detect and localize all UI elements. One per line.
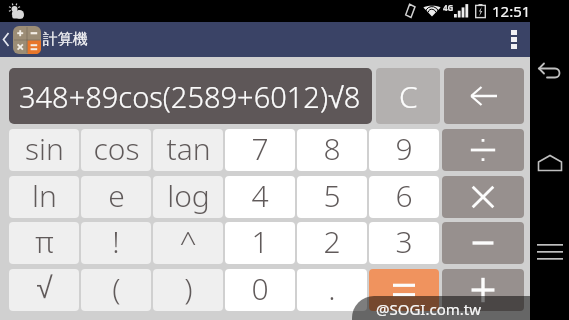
- button[interactable]: e: [81, 176, 151, 218]
- other: ÷: [468, 135, 498, 165]
- staticText: 1: [251, 222, 269, 262]
- staticText: cos: [93, 129, 140, 169]
- staticText: 2: [323, 222, 341, 262]
- button[interactable]: 348+89cos(2589+6012)√8: [9, 68, 372, 124]
- staticText: 348+89cos(2589+6012)√8: [19, 77, 361, 116]
- button[interactable]: C: [376, 68, 440, 124]
- button[interactable]: ×: [442, 176, 524, 218]
- staticText: 0: [251, 269, 269, 309]
- staticText: 8: [323, 129, 341, 169]
- button[interactable]: ln: [9, 176, 79, 218]
- other: +: [468, 275, 498, 305]
- button[interactable]: !: [81, 222, 151, 264]
- button[interactable]: 8: [297, 129, 367, 171]
- button[interactable]: ÷: [442, 129, 524, 171]
- staticText: 4: [251, 176, 269, 216]
- staticText: ln: [32, 176, 57, 216]
- button[interactable]: Back: [530, 52, 569, 92]
- staticText: 3: [395, 222, 413, 262]
- staticText: log: [167, 176, 210, 216]
- button[interactable]: 6: [369, 176, 439, 218]
- staticText: 9: [395, 129, 413, 169]
- other: −: [468, 228, 498, 258]
- button[interactable]: 2: [297, 222, 367, 264]
- button[interactable]: cos: [81, 129, 151, 171]
- button[interactable]: π: [9, 222, 79, 264]
- other: Back: [0, 22, 13, 57]
- staticText: 5: [323, 176, 341, 216]
- staticText: tan: [166, 129, 211, 169]
- button[interactable]: +: [442, 269, 524, 311]
- staticText: sin: [25, 129, 64, 169]
- button[interactable]: Back: [0, 22, 88, 57]
- button[interactable]: ): [153, 269, 223, 311]
- staticText: π: [35, 222, 54, 262]
- staticText: √: [36, 271, 53, 305]
- button[interactable]: 0: [225, 269, 295, 311]
- staticText: .: [328, 269, 336, 309]
- other: =: [389, 275, 419, 305]
- staticText: ^: [179, 222, 197, 262]
- other: ×: [468, 182, 498, 212]
- staticText: (: [112, 269, 121, 309]
- staticText: !: [112, 222, 120, 262]
- button[interactable]: 5: [297, 176, 367, 218]
- staticText: 計算機: [43, 30, 88, 49]
- staticText: e: [108, 176, 125, 216]
- button[interactable]: sin: [9, 129, 79, 171]
- staticText: 12:51: [492, 1, 531, 21]
- button[interactable]: =: [369, 269, 439, 311]
- button[interactable]: 3: [369, 222, 439, 264]
- staticText: @SOGI.com.tw: [376, 299, 481, 319]
- button[interactable]: 4: [225, 176, 295, 218]
- staticText: 4G: [443, 2, 454, 13]
- button[interactable]: Recent apps: [530, 233, 569, 273]
- button[interactable]: √: [9, 269, 79, 311]
- button[interactable]: (: [81, 269, 151, 311]
- button[interactable]: 1: [225, 222, 295, 264]
- staticText: 7: [251, 129, 269, 169]
- button[interactable]: log: [153, 176, 223, 218]
- button[interactable]: 9: [369, 129, 439, 171]
- staticText: 6: [395, 176, 413, 216]
- button[interactable]: tan: [153, 129, 223, 171]
- button[interactable]: Home: [530, 143, 569, 183]
- button[interactable]: ^: [153, 222, 223, 264]
- button[interactable]: 7: [225, 129, 295, 171]
- button[interactable]: More options: [498, 22, 530, 57]
- button[interactable]: .: [297, 269, 367, 311]
- staticText: ): [184, 269, 193, 309]
- button[interactable]: −: [442, 222, 524, 264]
- button[interactable]: Backspace: [444, 68, 524, 124]
- staticText: C: [399, 76, 418, 117]
